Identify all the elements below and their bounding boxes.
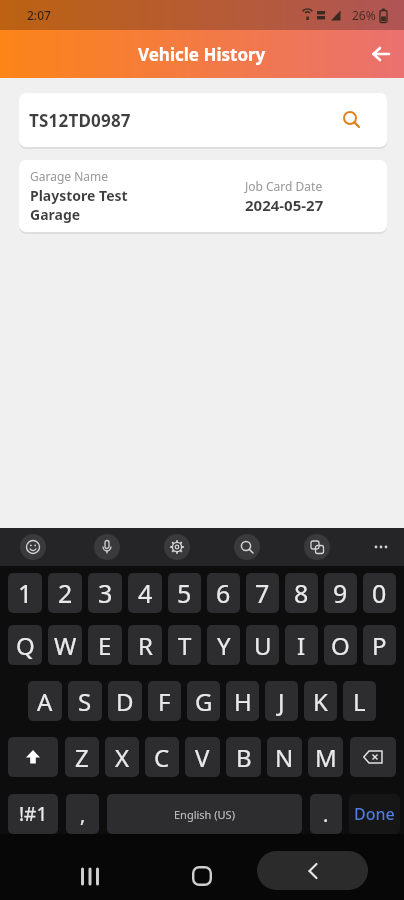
button[interactable]: D [108,681,142,721]
staticText: A [37,685,53,718]
button[interactable]: P [363,625,396,665]
staticText: T [178,629,192,662]
staticText: L [353,685,366,718]
button[interactable]: 8 [285,573,318,613]
button[interactable]: M [308,737,343,777]
staticText: 0 [372,576,387,610]
button[interactable]: 9 [324,573,357,613]
staticText: G [195,685,213,718]
button[interactable]: TS12TD0987 [19,93,387,147]
staticText: 26% [352,7,376,23]
staticText: 5 [177,576,192,610]
staticText: 2024-05-27 [245,195,324,215]
button[interactable]: 1 [8,573,42,613]
button[interactable]: Q [8,625,42,665]
button[interactable] [368,534,394,560]
staticText: Playstore Test Garage [30,186,128,224]
button[interactable]: C [145,737,179,777]
staticText: Garage Name [30,168,109,184]
button[interactable]: W [48,625,82,665]
staticText: R [138,629,153,662]
button[interactable]: Done [349,794,400,834]
staticText: 1 [18,576,33,610]
staticText: F [158,685,171,718]
button[interactable]: 7 [246,573,279,613]
staticText: C [154,741,170,774]
button[interactable]: , [66,794,99,834]
staticText: 6 [216,576,231,610]
button[interactable]: V [185,737,220,777]
button[interactable]: T [168,625,201,665]
staticText: Done [354,803,395,825]
button[interactable]: K [304,681,337,721]
button[interactable]: N [267,737,302,777]
button[interactable]: J [265,681,298,721]
button[interactable]: !#1 [8,794,58,834]
staticText: 9 [333,576,348,610]
staticText: M [315,741,337,774]
button[interactable]: F [148,681,181,721]
staticText: H [234,685,252,718]
button[interactable]: E [88,625,122,665]
staticText: W [54,629,77,662]
staticText: D [116,685,134,718]
button[interactable]: 3 [88,573,122,613]
button[interactable] [8,737,58,777]
button[interactable] [184,858,220,894]
button[interactable]: 4 [128,573,162,613]
button[interactable] [94,534,120,560]
staticText: 2:07 [27,7,51,23]
staticText: U [254,629,272,662]
button[interactable]: O [324,625,357,665]
staticText: !#1 [19,801,48,827]
staticText: . [323,801,329,828]
button[interactable]: B [226,737,261,777]
button[interactable] [304,534,330,560]
staticText: 3 [98,576,113,610]
button[interactable]: Y [207,625,240,665]
staticText: 8 [294,576,309,610]
staticText: Y [217,629,231,662]
button[interactable] [234,534,260,560]
button[interactable]: 6 [207,573,240,613]
button[interactable]: A [28,681,62,721]
staticText: X [115,741,130,774]
button[interactable]: R [128,625,162,665]
staticText: I [297,629,306,662]
staticText: English (US) [174,807,235,822]
button[interactable]: S [68,681,102,721]
button[interactable]: 5 [168,573,201,613]
button[interactable] [72,858,108,894]
staticText: V [195,741,210,774]
staticText: 4 [138,576,153,610]
button[interactable]: U [246,625,279,665]
button[interactable]: . [310,794,342,834]
button[interactable]: X [105,737,139,777]
button[interactable] [366,39,396,69]
button[interactable]: Z [65,737,99,777]
staticText: , [80,801,86,828]
staticText: J [278,685,285,718]
button[interactable] [350,737,396,777]
staticText: P [372,629,387,662]
staticText: S [78,685,92,718]
staticText: TS12TD0987 [29,109,131,132]
button[interactable]: 2 [48,573,82,613]
button[interactable] [20,534,46,560]
button[interactable]: 0 [363,573,396,613]
button[interactable] [257,851,368,890]
staticText: N [275,741,294,774]
staticText: Z [75,741,89,774]
button[interactable]: Garage Name [19,160,387,232]
staticText: B [236,741,252,774]
button[interactable]: G [187,681,220,721]
button[interactable] [164,534,190,560]
staticText: Job Card Date [245,178,323,194]
button[interactable]: L [343,681,376,721]
staticText: Vehicle History [138,43,266,66]
button[interactable]: I [285,625,318,665]
staticText: E [98,629,112,662]
button[interactable]: H [226,681,259,721]
staticText: K [313,685,328,718]
button[interactable]: English (US) [107,794,302,834]
